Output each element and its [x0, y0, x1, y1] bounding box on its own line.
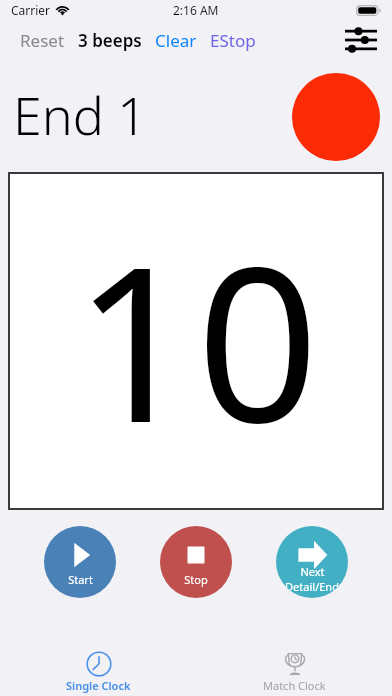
staticText: Next: [300, 564, 325, 579]
staticText: Single Clock: [66, 678, 131, 693]
staticText: 3 beeps: [78, 29, 142, 52]
staticText: Detail/End: [285, 579, 339, 594]
button[interactable]: Clear: [153, 25, 199, 56]
staticText: End 1: [13, 79, 148, 150]
button[interactable]: Status indicator: [292, 73, 380, 161]
staticText: Reset: [20, 29, 65, 52]
staticText: Match Clock: [263, 678, 326, 693]
button[interactable]: EStop: [208, 25, 258, 56]
button[interactable]: Settings: [340, 22, 382, 58]
staticText: Carrier: [11, 2, 51, 18]
button[interactable]: Reset: [18, 25, 67, 56]
button[interactable]: Next: [276, 526, 348, 598]
staticText: Clear: [155, 29, 197, 52]
button[interactable]: Stop: [160, 526, 232, 598]
staticText: 2:16 AM: [173, 2, 219, 18]
button[interactable]: Start: [44, 526, 116, 598]
staticText: EStop: [210, 29, 256, 52]
staticText: Stop: [184, 572, 208, 587]
button[interactable]: Single Clock: [0, 647, 196, 696]
button[interactable]: Match Clock: [196, 647, 392, 696]
staticText: 10: [74, 193, 319, 484]
button[interactable]: 3 beeps: [76, 25, 144, 56]
staticText: Start: [68, 572, 93, 587]
